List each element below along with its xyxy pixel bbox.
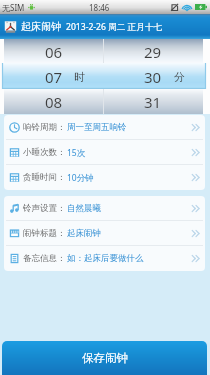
staticText: 闹钟标题：	[23, 228, 66, 239]
button[interactable]: 保存闹钟	[2, 341, 207, 375]
staticText: 贪睡时间：	[23, 172, 66, 183]
staticText: 起床闹钟	[21, 20, 61, 33]
staticText: 备忘信息：	[23, 253, 66, 264]
button[interactable]: 铃声设置：	[4, 196, 205, 221]
staticText: 时	[74, 70, 85, 84]
button[interactable]: 贪睡时间：	[4, 165, 205, 190]
staticText: 响铃周期：	[23, 122, 66, 133]
staticText: 起床闹钟	[67, 228, 101, 239]
staticText: 29	[144, 42, 162, 62]
staticText: 15次	[67, 147, 86, 159]
button[interactable]: 闹钟标题：	[4, 221, 205, 246]
staticText: 2013-2-26 周二 正月十七	[66, 21, 162, 33]
staticText: 小睡次数：	[23, 147, 66, 158]
button[interactable]: 响铃周期：	[4, 115, 205, 140]
staticText: 18:46	[89, 2, 110, 13]
button[interactable]: 小睡次数：	[4, 140, 205, 165]
staticText: 分	[174, 70, 185, 84]
staticText: 07	[45, 67, 63, 87]
staticText: 保存闹钟	[82, 351, 128, 365]
staticText: 10分钟	[67, 172, 94, 184]
staticText: 30	[144, 67, 162, 87]
staticText: 铃声设置：	[23, 203, 66, 214]
button[interactable]: 备忘信息：	[4, 246, 205, 271]
staticText: 08	[45, 92, 63, 112]
staticText: 周一至周五响铃	[67, 122, 127, 133]
staticText: 如：起床后要做什么	[67, 253, 144, 264]
staticText: 无SIM	[2, 2, 25, 13]
staticText: 自然晨曦	[67, 203, 101, 214]
staticText: 06	[45, 42, 63, 62]
staticText: 31	[144, 92, 162, 112]
